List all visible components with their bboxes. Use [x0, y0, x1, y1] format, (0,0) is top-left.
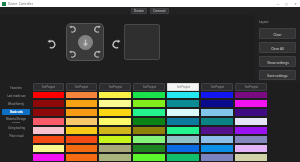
staticText: Last made use — [7, 94, 26, 98]
button[interactable]: Set Project — [235, 83, 267, 91]
button[interactable]: Set Project — [167, 83, 199, 91]
staticText: Wood family — [8, 102, 24, 106]
button[interactable]: Set Project — [99, 83, 131, 91]
button[interactable]: Window button — [282, 0, 291, 7]
button[interactable]: Clear All — [259, 42, 296, 53]
button[interactable]: Center — [78, 35, 93, 50]
button[interactable]: Wood family — [2, 101, 30, 107]
other: Rotate counter clockwise — [46, 39, 57, 50]
button[interactable]: Set Project — [201, 83, 233, 91]
button[interactable]: Device — [134, 9, 144, 13]
button[interactable]: Basic sets — [2, 109, 30, 115]
button[interactable]: Window button — [291, 0, 300, 7]
staticText: Using tooling — [8, 126, 25, 130]
button[interactable]: Clear — [259, 28, 296, 39]
staticText: Basic sets — [10, 110, 23, 114]
staticText: Plain visual — [9, 134, 24, 138]
other: Tilt up right — [93, 25, 102, 34]
button[interactable]: Last made use — [2, 93, 30, 99]
staticText: Material Design screen — [2, 117, 30, 123]
staticText: — — [276, 2, 280, 6]
button[interactable]: Window button — [273, 0, 282, 7]
staticText: □ — [285, 2, 288, 5]
button[interactable]: Set Project — [66, 83, 97, 91]
button[interactable]: Set Project — [33, 83, 64, 91]
other: Home — [81, 38, 90, 47]
staticText: Save settings — [267, 73, 288, 77]
staticText: Clear — [273, 32, 282, 36]
button[interactable]: Using tooling — [2, 125, 30, 131]
other: Tilt down left — [68, 50, 77, 59]
button[interactable]: Favorites — [2, 85, 30, 91]
button[interactable]: Set Project — [133, 83, 165, 91]
staticText: Set Project — [177, 85, 190, 89]
button[interactable]: Show settings — [259, 56, 296, 67]
button[interactable]: Connect — [153, 9, 166, 13]
staticText: Layout — [259, 20, 269, 24]
button[interactable]: Save settings — [259, 70, 296, 80]
staticText: Set Project — [211, 85, 224, 89]
button[interactable]: Preview area — [124, 24, 160, 60]
staticText: Set Project — [42, 85, 55, 89]
button[interactable]: Material Design screen — [2, 117, 30, 123]
button[interactable]: Plain visual — [2, 133, 30, 139]
staticText: Device Controller — [8, 2, 33, 6]
